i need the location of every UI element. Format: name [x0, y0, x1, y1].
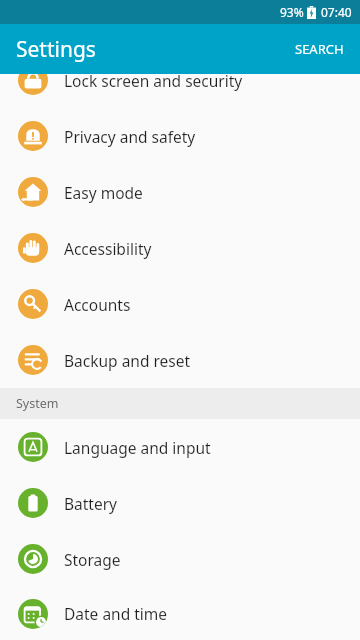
staticText: 93% [280, 4, 304, 20]
staticText: Battery [64, 493, 118, 514]
button[interactable]: Backup and reset [0, 332, 360, 388]
button[interactable]: Battery [0, 475, 360, 531]
button[interactable]: Accessibility [0, 220, 360, 276]
button[interactable]: Lock screen and security [0, 52, 360, 108]
staticText: Accessibility [64, 238, 152, 259]
button[interactable]: Easy mode [0, 164, 360, 220]
button[interactable]: Accounts [0, 276, 360, 332]
button[interactable]: SEARCH [279, 28, 360, 70]
staticText: Lock screen and security [64, 70, 243, 91]
button[interactable]: Date and time [0, 587, 360, 640]
staticText: 07:40 [321, 4, 352, 20]
staticText: Easy mode [64, 182, 143, 203]
staticText: Privacy and safety [64, 126, 196, 147]
staticText: Date and time [64, 603, 168, 624]
staticText: Accounts [64, 294, 131, 315]
staticText: Storage [64, 549, 121, 570]
staticText: SEARCH [295, 40, 344, 58]
staticText: Language and input [64, 437, 211, 458]
staticText: System [16, 395, 59, 412]
staticText: Backup and reset [64, 350, 191, 371]
button[interactable]: Privacy and safety [0, 108, 360, 164]
button[interactable]: Language and input [0, 419, 360, 475]
button[interactable]: Storage [0, 531, 360, 587]
staticText: Settings [16, 35, 96, 64]
